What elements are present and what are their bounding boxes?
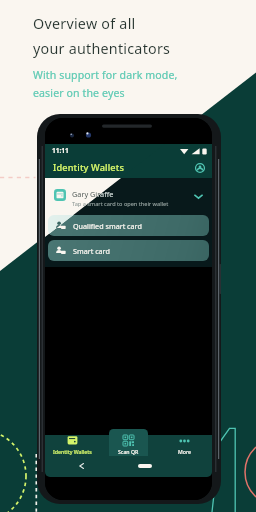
button[interactable]: Account	[195, 163, 205, 173]
staticText: Identity Wallets	[53, 448, 92, 455]
button[interactable]: Scan QR	[100, 429, 156, 456]
button[interactable]: Expand	[194, 192, 203, 201]
staticText: Identity Wallets	[53, 161, 125, 174]
staticText: Qualified smart card	[73, 221, 142, 231]
staticText: 11:11	[52, 146, 69, 155]
button[interactable]: Account	[195, 163, 205, 173]
button[interactable]: Gary Giraffe	[45, 178, 212, 215]
button[interactable]: Smart card	[48, 240, 209, 261]
staticText: 11:11	[52, 146, 69, 155]
button[interactable]: Back	[79, 463, 84, 469]
staticText: your authenticators	[33, 39, 171, 58]
staticText: More	[178, 448, 191, 455]
button[interactable]: Expand	[194, 192, 203, 201]
staticText: Scan QR	[118, 448, 139, 455]
staticText: Tap a smart card to open their wallet	[72, 200, 169, 208]
button[interactable]: Scan QR	[100, 429, 156, 456]
button[interactable]: Back	[79, 463, 84, 469]
button[interactable]: Gary Giraffe	[45, 178, 212, 215]
staticText: Smart card	[73, 246, 110, 256]
staticText: Scan QR	[118, 448, 139, 455]
staticText: Identity Wallets	[53, 448, 92, 455]
button[interactable]: Identity Wallets	[45, 429, 100, 456]
button[interactable]: Qualified smart card	[48, 215, 209, 236]
staticText: More	[178, 448, 191, 455]
staticText: With support for dark mode,	[33, 68, 178, 82]
staticText: Qualified smart card	[73, 221, 142, 231]
button[interactable]: More	[156, 429, 212, 456]
staticText: Overview of all	[33, 14, 136, 33]
staticText: easier on the eyes	[33, 86, 125, 100]
staticText: Tap a smart card to open their wallet	[72, 200, 169, 208]
staticText: Smart card	[73, 246, 110, 256]
button[interactable]: Qualified smart card	[48, 215, 209, 236]
button[interactable]: Smart card	[48, 240, 209, 261]
staticText: Gary Giraffe	[72, 189, 114, 199]
button[interactable]: Identity Wallets	[45, 429, 100, 456]
staticText: Gary Giraffe	[72, 189, 114, 199]
button[interactable]: More	[156, 429, 212, 456]
staticText: Identity Wallets	[53, 161, 125, 174]
